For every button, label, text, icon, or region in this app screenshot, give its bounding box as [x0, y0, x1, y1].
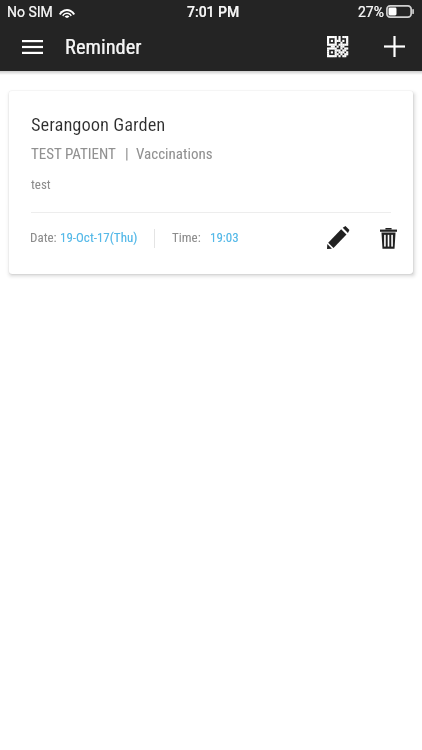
staticText: |: [125, 145, 129, 163]
button[interactable]: Serangoon Garden: [9, 91, 413, 274]
button[interactable]: Delete reminder: [367, 217, 409, 259]
staticText: 19:03: [210, 230, 239, 245]
staticText: No SIM: [7, 4, 53, 20]
button[interactable]: Edit reminder: [317, 217, 359, 259]
staticText: Reminder: [65, 35, 142, 59]
button[interactable]: Add reminder: [371, 23, 417, 69]
staticText: TEST PATIENT: [31, 145, 116, 163]
staticText: Vaccinations: [136, 145, 213, 163]
staticText: Time:: [172, 230, 201, 245]
staticText: 27%: [358, 4, 384, 20]
staticText: Serangoon Garden: [31, 114, 166, 136]
staticText: test: [31, 177, 51, 192]
button[interactable]: Scan QR code: [314, 23, 360, 69]
staticText: 7:01 PM: [187, 4, 240, 20]
staticText: 19-Oct-17(Thu): [60, 230, 138, 245]
staticText: Date:: [30, 230, 57, 245]
button[interactable]: Open navigation menu: [9, 24, 55, 70]
